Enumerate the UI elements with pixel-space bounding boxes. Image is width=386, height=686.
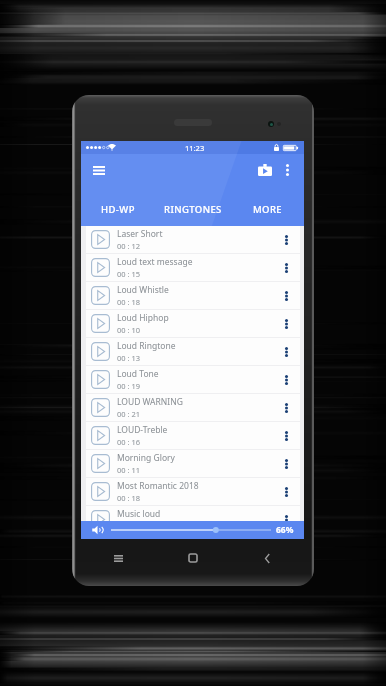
staticText: Laser Short bbox=[117, 228, 163, 240]
staticText: Morning Glory bbox=[117, 452, 175, 464]
button[interactable]: Back bbox=[230, 544, 304, 572]
staticText: Loud Hiphop bbox=[117, 312, 169, 324]
staticText: 00 : 19 bbox=[117, 381, 141, 391]
button[interactable]: Options bbox=[280, 290, 292, 302]
staticText: 00 : 14 bbox=[117, 521, 141, 531]
button[interactable]: Options bbox=[280, 514, 292, 526]
button[interactable]: RINGTONES bbox=[154, 193, 231, 226]
button[interactable]: Videos bbox=[254, 159, 276, 181]
button[interactable]: 66% bbox=[81, 521, 304, 539]
staticText: Loud Whistle bbox=[117, 284, 169, 296]
button[interactable]: Options bbox=[280, 430, 292, 442]
button[interactable]: HD-WP bbox=[81, 193, 154, 226]
button[interactable]: Music loud bbox=[86, 506, 300, 533]
button[interactable]: Options bbox=[280, 262, 292, 274]
button[interactable]: LOUD WARNING bbox=[86, 394, 300, 421]
button[interactable]: Options bbox=[280, 486, 292, 498]
button[interactable]: More options bbox=[277, 160, 297, 180]
button[interactable]: Options bbox=[280, 402, 292, 414]
button[interactable]: Loud Tone bbox=[86, 366, 300, 393]
staticText: 11:23 bbox=[185, 143, 205, 153]
staticText: 00 : 12 bbox=[117, 241, 141, 251]
button[interactable]: Options bbox=[280, 374, 292, 386]
staticText: Loud Tone bbox=[117, 368, 159, 380]
staticText: 00 : 21 bbox=[117, 409, 141, 419]
button[interactable]: Loud Whistle bbox=[86, 282, 300, 309]
button[interactable]: Options bbox=[280, 234, 292, 246]
button[interactable]: Loud Ringtone bbox=[86, 338, 300, 365]
button[interactable]: Loud text message bbox=[86, 254, 300, 281]
staticText: MORE bbox=[253, 203, 283, 216]
staticText: Most Romantic 2018 bbox=[117, 480, 199, 492]
staticText: 00 : 18 bbox=[117, 297, 141, 307]
button[interactable]: Options bbox=[280, 318, 292, 330]
staticText: 00 : 10 bbox=[117, 325, 141, 335]
button[interactable]: MORE bbox=[231, 193, 304, 226]
button[interactable]: LOUD-Treble bbox=[86, 422, 300, 449]
staticText: 00 : 16 bbox=[117, 437, 141, 447]
staticText: Loud Ringtone bbox=[117, 340, 176, 352]
button[interactable]: Options bbox=[280, 458, 292, 470]
staticText: Music loud bbox=[117, 508, 161, 520]
staticText: 00 : 13 bbox=[117, 353, 141, 363]
staticText: Loud text message bbox=[117, 256, 193, 268]
staticText: 00 : 15 bbox=[117, 269, 141, 279]
staticText: 66% bbox=[276, 524, 294, 536]
staticText: LOUD WARNING bbox=[117, 396, 183, 408]
button[interactable]: Most Romantic 2018 bbox=[86, 478, 300, 505]
staticText: 00 : 18 bbox=[117, 493, 141, 503]
staticText: LOUD-Treble bbox=[117, 424, 168, 436]
button[interactable]: Recents bbox=[81, 544, 156, 572]
button[interactable]: Loud Hiphop bbox=[86, 310, 300, 337]
button[interactable]: Options bbox=[280, 346, 292, 358]
button[interactable]: Morning Glory bbox=[86, 450, 300, 477]
staticText: 00 : 11 bbox=[117, 465, 141, 475]
staticText: HD-WP bbox=[101, 203, 135, 216]
button[interactable]: Laser Short bbox=[86, 226, 300, 253]
button[interactable]: Home bbox=[156, 544, 230, 572]
button[interactable]: Menu bbox=[87, 158, 111, 182]
staticText: RINGTONES bbox=[164, 203, 222, 216]
